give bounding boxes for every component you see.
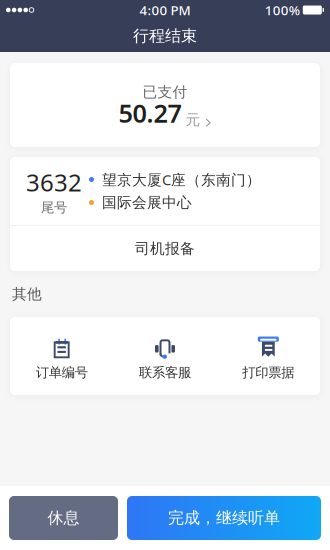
staticText: 其他 — [12, 285, 42, 303]
staticText: 联系客服 — [139, 364, 191, 381]
button[interactable]: 订单编号 — [10, 317, 113, 395]
staticText: 尾号 — [41, 199, 67, 216]
staticText: 50.27 — [118, 96, 181, 130]
staticText: 4:00 PM — [139, 1, 190, 19]
staticText: 国际会展中心 — [102, 193, 192, 211]
staticText: 望京大厦C座（东南门） — [102, 170, 261, 189]
button[interactable]: 休息 — [9, 496, 118, 540]
staticText: 打印票据 — [242, 364, 294, 381]
staticText: 已支付 — [142, 83, 187, 101]
staticText: 元 — [185, 111, 200, 129]
staticText: 行程结束 — [133, 26, 197, 46]
button[interactable]: 完成，继续听单 — [127, 496, 321, 540]
staticText: 司机报备 — [135, 239, 195, 257]
button[interactable]: 联系客服 — [113, 317, 217, 395]
staticText: 休息 — [47, 508, 79, 528]
staticText: 3632 — [26, 166, 82, 198]
staticText: 订单编号 — [36, 364, 88, 381]
staticText: 完成，继续听单 — [168, 508, 280, 528]
button[interactable]: 已支付 — [10, 63, 320, 147]
button[interactable]: 司机报备 — [10, 226, 320, 271]
staticText: 100% — [265, 1, 300, 19]
button[interactable]: 打印票据 — [217, 317, 320, 395]
